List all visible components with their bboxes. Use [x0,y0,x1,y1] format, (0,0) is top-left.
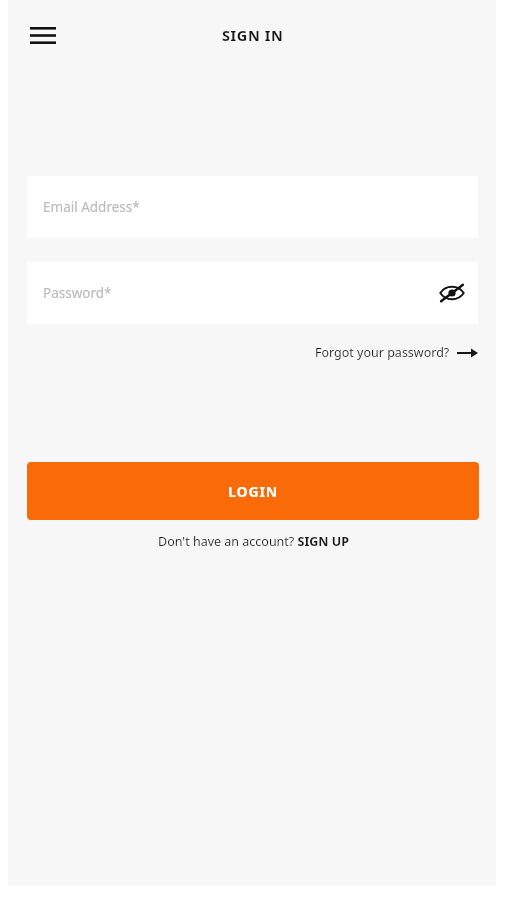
button[interactable]: Password* [27,262,478,324]
staticText: Don't have an account? SIGN UP [158,533,349,550]
button[interactable]: LOGIN [27,462,479,520]
staticText: Email Address* [43,198,140,216]
staticText: Forgot your password? [315,344,450,361]
button[interactable]: Don't have an account? SIGN UP [152,529,355,554]
button[interactable]: Open navigation menu [19,11,67,59]
button[interactable]: Email Address* [27,176,478,238]
staticText: SIGN IN [222,25,284,45]
button[interactable]: Show password [435,276,469,310]
staticText: LOGIN [228,482,279,501]
staticText: Password* [43,284,112,302]
button[interactable]: Forgot your password? [313,341,480,364]
